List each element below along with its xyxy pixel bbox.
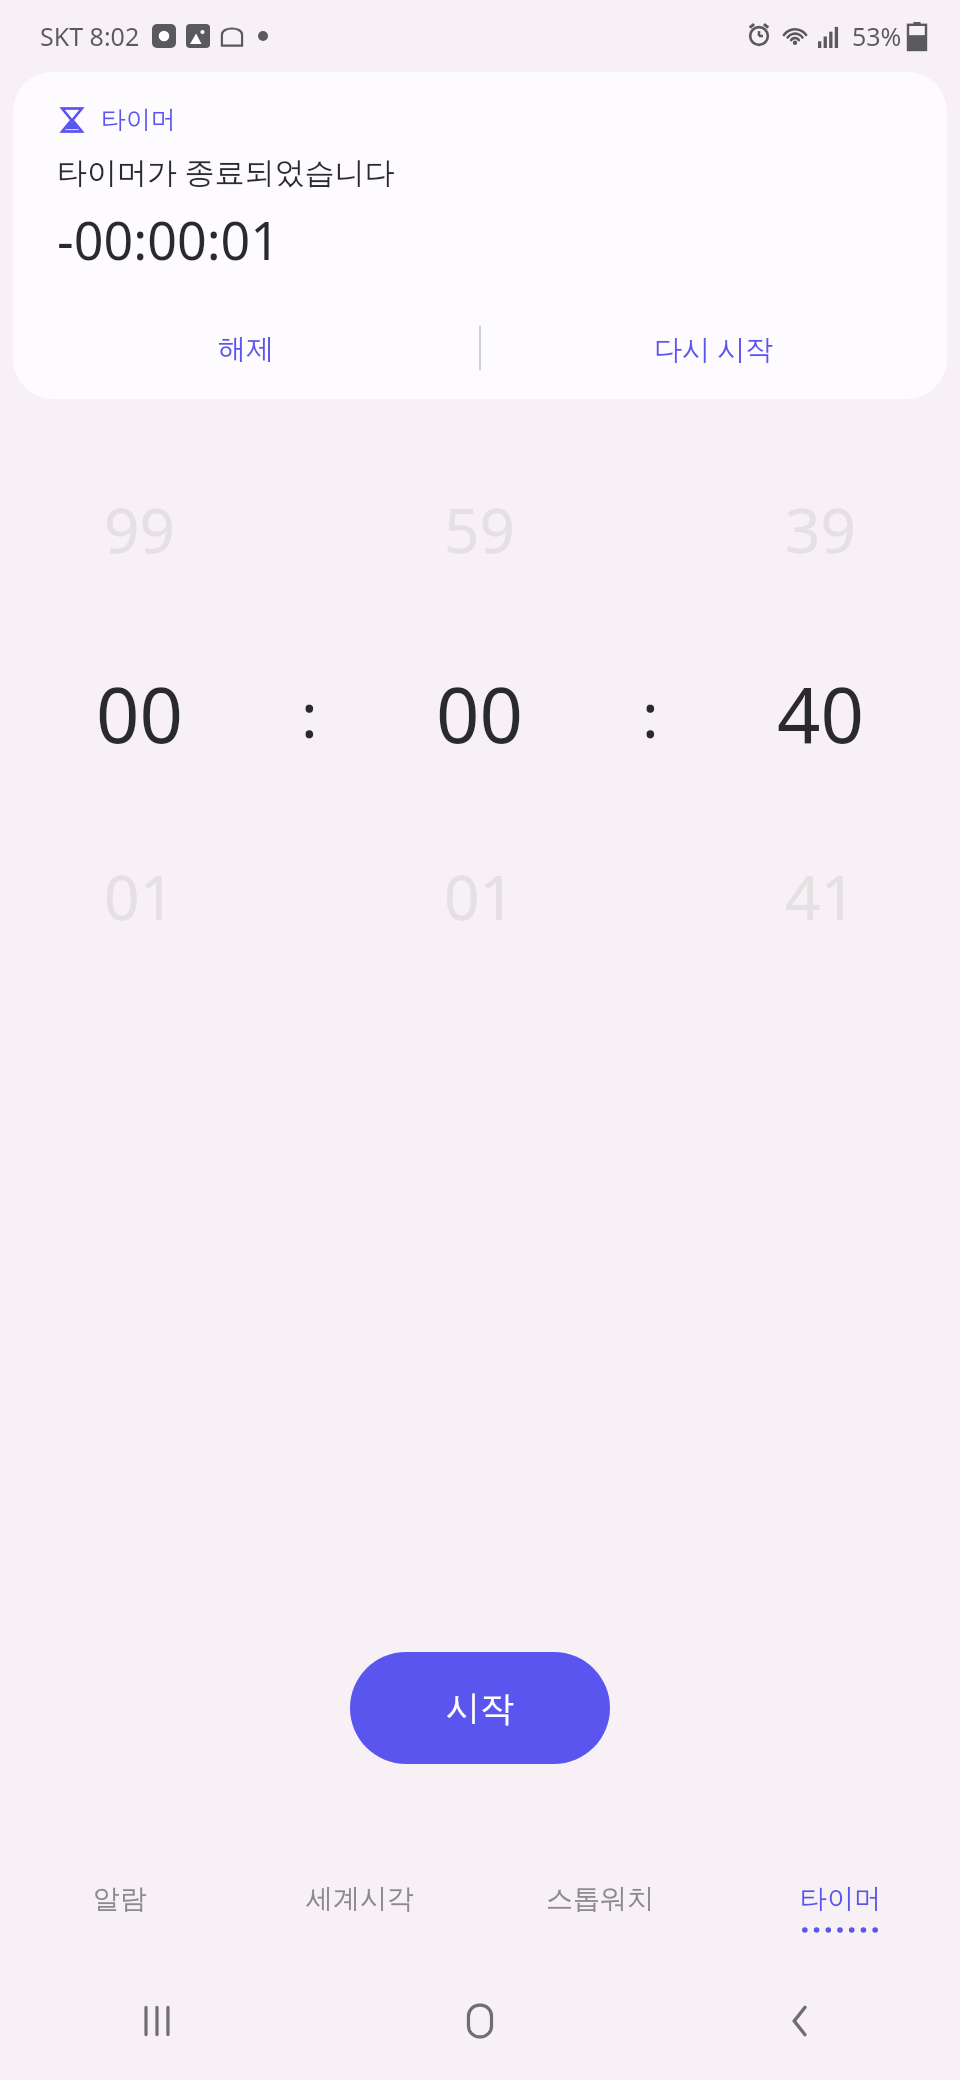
staticText: 99 xyxy=(104,487,175,571)
button[interactable]: 스톱워치 xyxy=(480,1876,720,1954)
button[interactable]: 40 xyxy=(681,654,960,774)
staticText: 59 xyxy=(444,487,515,571)
button[interactable]: 00 xyxy=(0,654,278,774)
staticText: 해제 xyxy=(218,331,274,366)
staticText: 01 xyxy=(104,854,175,938)
button[interactable]: 세계시각 xyxy=(240,1876,480,1954)
staticText: 53% xyxy=(852,19,902,53)
staticText: -00:00:01 xyxy=(57,204,281,275)
staticText: 41 xyxy=(785,854,856,938)
staticText: : xyxy=(642,672,659,756)
staticText: 40 xyxy=(777,662,864,766)
staticText: 타이머 xyxy=(800,1882,881,1916)
button[interactable]: 타이머 xyxy=(720,1876,960,1954)
staticText: : xyxy=(301,672,318,756)
staticText: 타이머가 종료되었습니다 xyxy=(57,151,395,192)
button[interactable]: 59 xyxy=(340,469,619,589)
staticText: 00 xyxy=(96,662,183,766)
staticText: 00 xyxy=(436,662,523,766)
staticText: 알람 xyxy=(93,1882,147,1916)
button[interactable]: 다시 시작 xyxy=(481,305,947,391)
staticText: SKT 8:02 xyxy=(40,19,140,53)
button[interactable]: 타이머 xyxy=(13,72,947,399)
staticText: 다시 시작 xyxy=(654,329,774,367)
button[interactable]: 해제 xyxy=(13,305,479,391)
button[interactable]: 99 xyxy=(0,469,278,589)
staticText: 타이머 xyxy=(101,104,176,135)
staticText: 01 xyxy=(444,854,515,938)
button[interactable]: 시작 xyxy=(350,1652,610,1764)
staticText: 세계시각 xyxy=(306,1882,414,1916)
button[interactable]: Home xyxy=(320,1978,640,2064)
button[interactable]: 알람 xyxy=(0,1876,240,1954)
staticText: 39 xyxy=(785,487,856,571)
button[interactable]: Back xyxy=(640,1978,960,2064)
button[interactable]: 00 xyxy=(340,654,619,774)
staticText: 시작 xyxy=(446,1687,514,1730)
button[interactable]: Recents xyxy=(0,1978,320,2064)
staticText: 스톱워치 xyxy=(546,1882,654,1916)
button[interactable]: 39 xyxy=(681,469,960,589)
